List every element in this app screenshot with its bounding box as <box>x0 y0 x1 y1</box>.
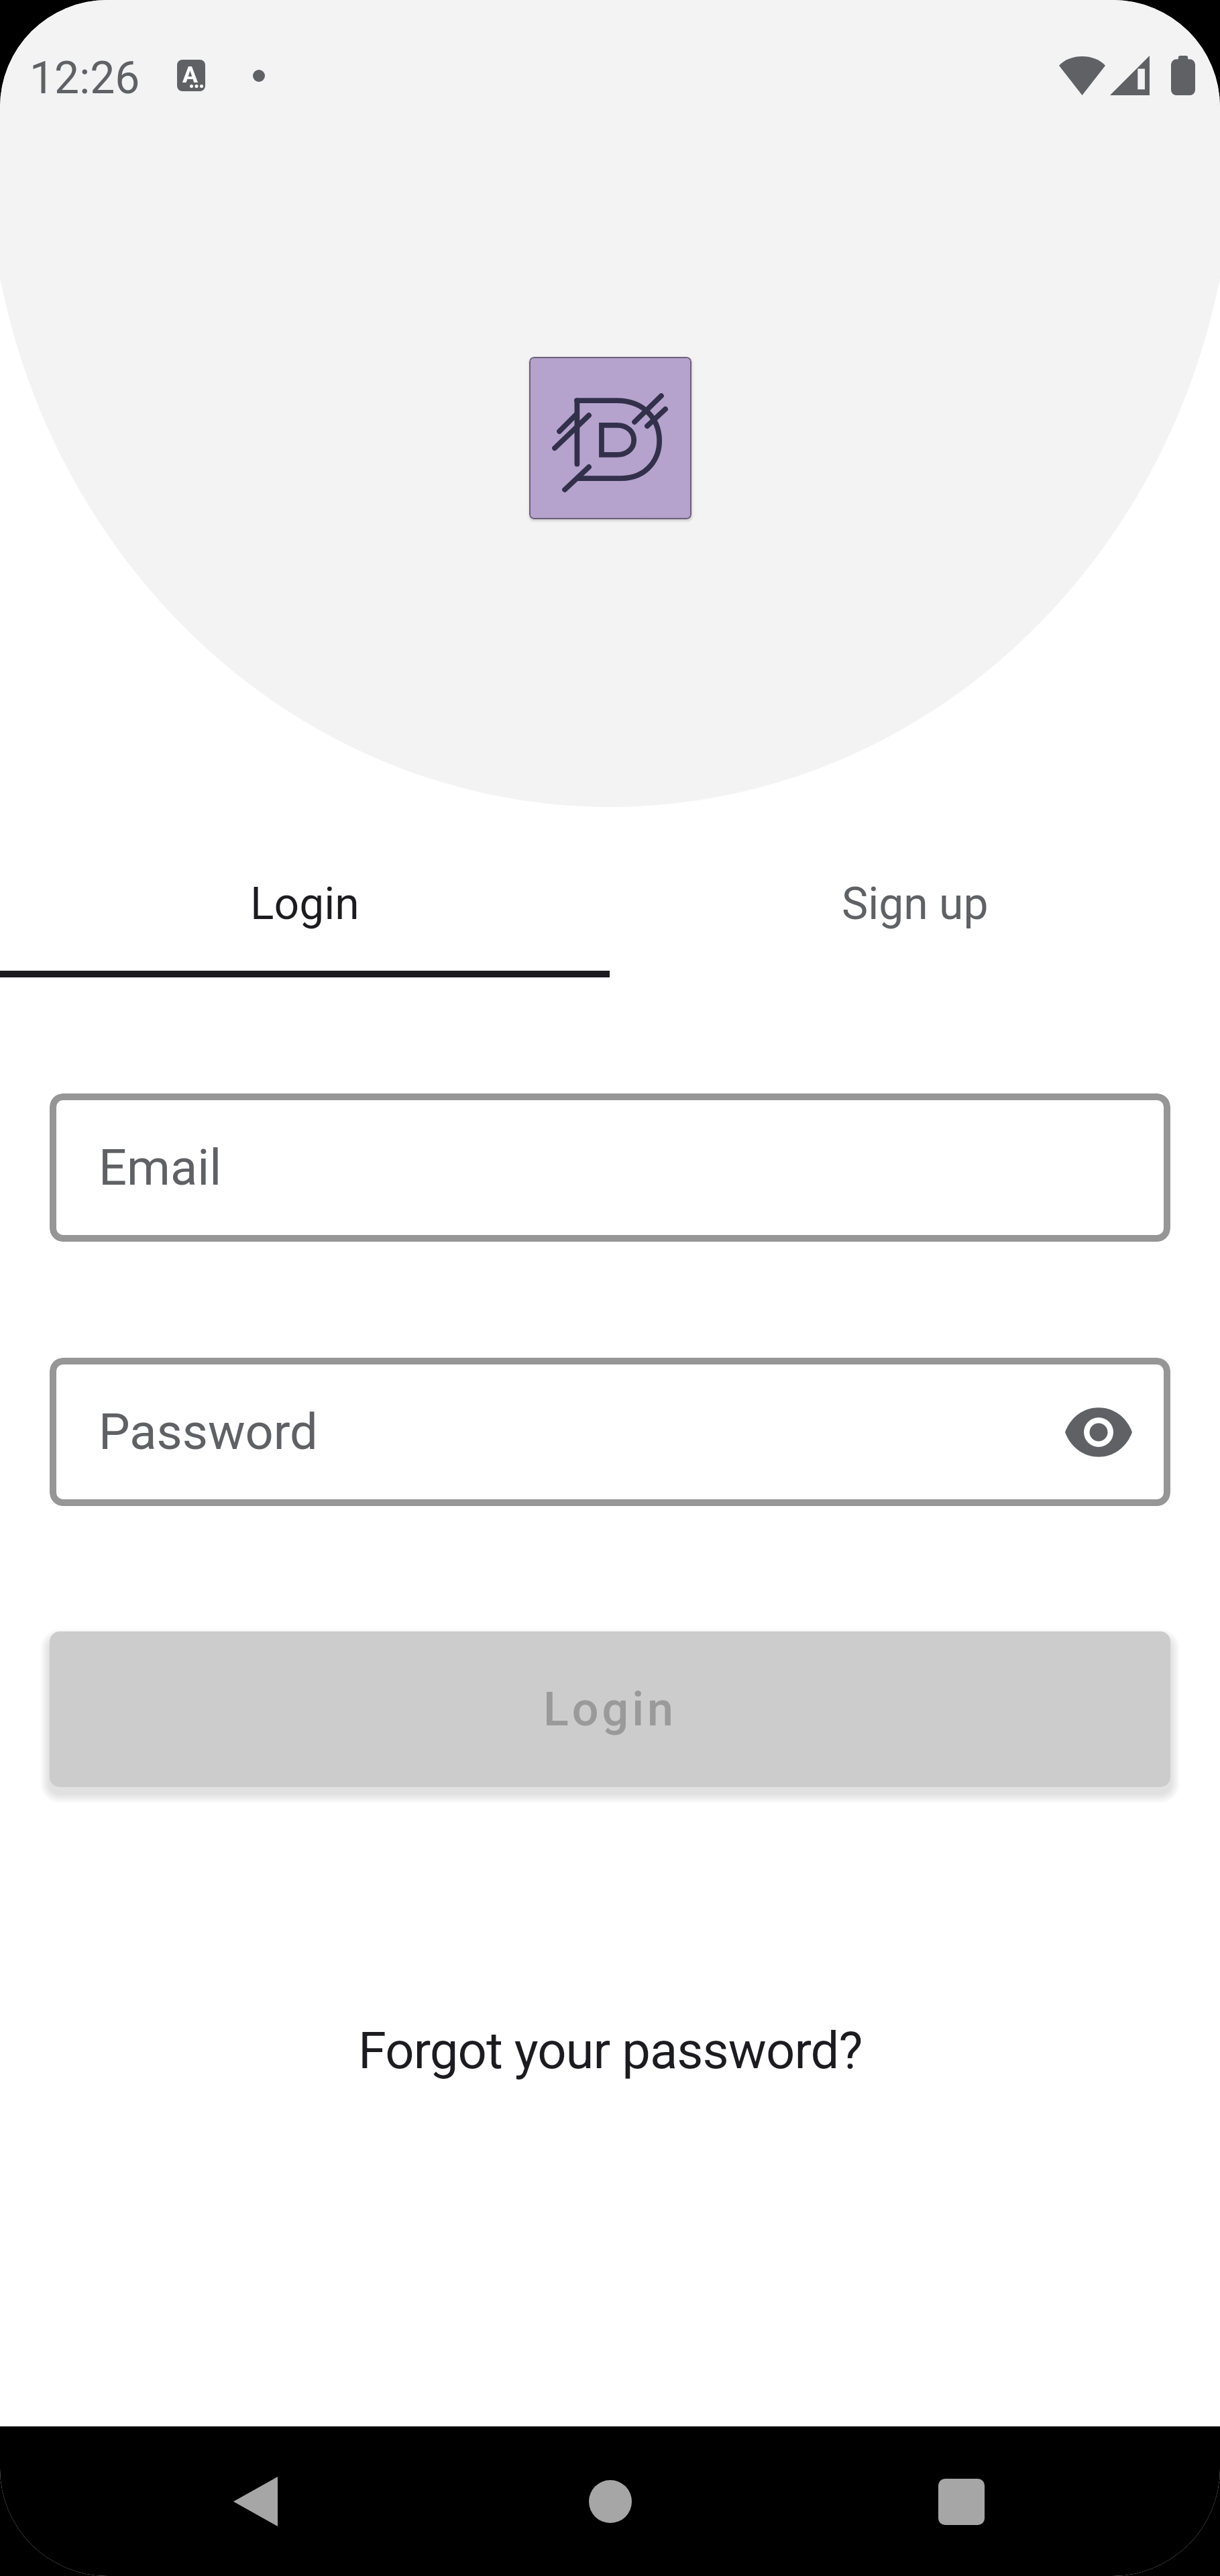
button[interactable]: Sign up <box>610 837 1220 971</box>
staticText: A <box>182 61 198 88</box>
button[interactable]: Recent apps <box>907 2448 1015 2555</box>
button[interactable]: Home <box>557 2448 664 2555</box>
button[interactable]: Email <box>50 1093 1170 1242</box>
button[interactable]: Login <box>0 837 610 971</box>
staticText: 12:26 <box>30 52 140 104</box>
staticText: Login <box>250 878 359 930</box>
staticText: Password <box>99 1403 318 1461</box>
staticText: Login <box>543 1682 677 1737</box>
staticText: Forgot your password? <box>358 2021 863 2080</box>
button[interactable]: Login <box>50 1631 1170 1787</box>
button[interactable]: Back <box>202 2448 309 2555</box>
button[interactable]: Show password <box>1062 1395 1135 1469</box>
button[interactable]: Forgot your password? <box>345 2011 876 2090</box>
staticText: Email <box>99 1138 222 1197</box>
staticText: Sign up <box>842 878 989 930</box>
button[interactable]: Password <box>50 1358 1170 1506</box>
